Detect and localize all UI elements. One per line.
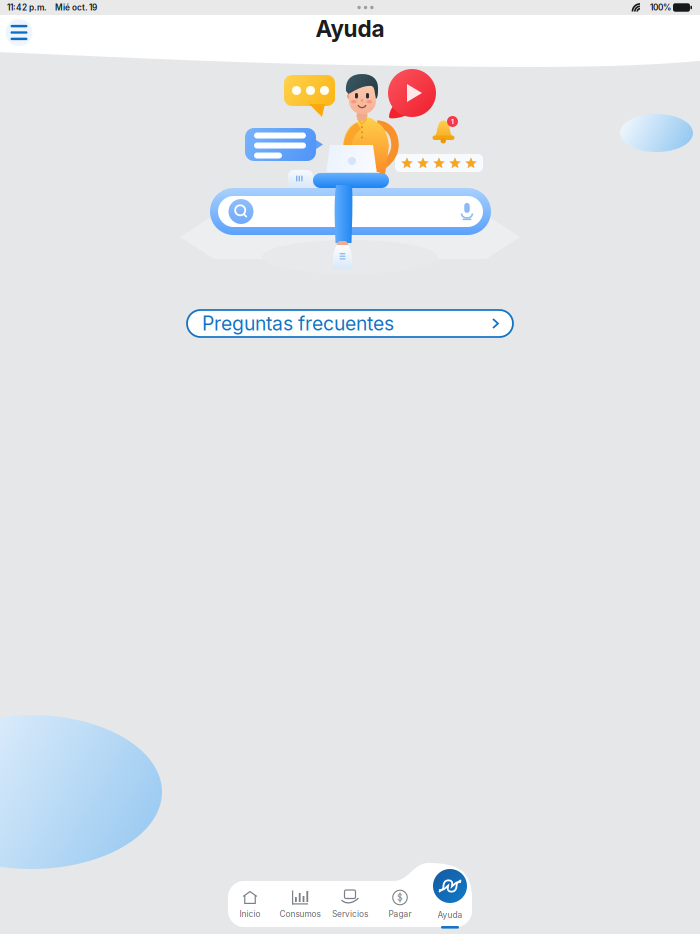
button[interactable]: Servicios — [318, 885, 382, 925]
staticText: Inicio — [239, 909, 260, 919]
staticText: Servicios — [332, 909, 368, 919]
staticText: 1 — [451, 117, 454, 126]
button[interactable]: Inicio — [224, 885, 276, 925]
staticText: 100% — [650, 2, 671, 12]
staticText: S — [397, 892, 403, 903]
button[interactable]: Ayuda — [425, 885, 475, 933]
staticText: Ayuda — [315, 15, 384, 42]
button[interactable]: Menú — [5, 19, 32, 46]
staticText: Mié oct. 19 — [55, 2, 97, 12]
staticText: Consumos — [279, 909, 320, 919]
button[interactable]: Preguntas frecuentes — [187, 310, 513, 337]
staticText: Ayuda — [437, 910, 462, 920]
staticText: Pagar — [388, 909, 411, 919]
button[interactable]: S — [375, 885, 425, 925]
staticText: 11:42 p.m. — [7, 2, 47, 12]
button[interactable]: Consumos — [265, 885, 335, 925]
staticText: Preguntas frecuentes — [202, 312, 394, 335]
